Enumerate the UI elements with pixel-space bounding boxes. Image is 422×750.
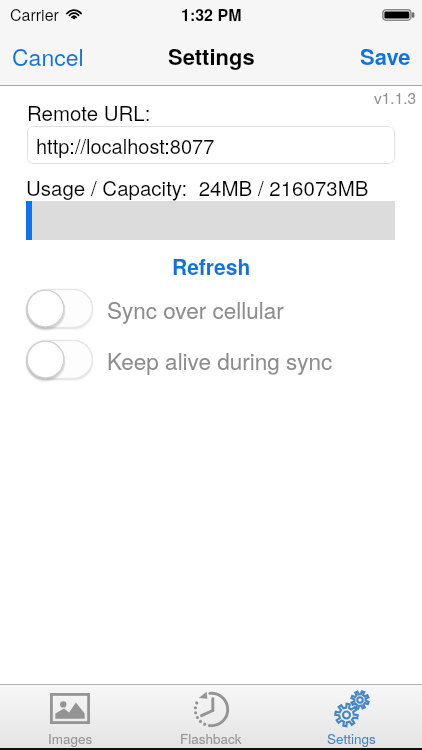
staticText: v1.1.3	[374, 86, 417, 108]
staticText: Usage / Capacity: 24MB / 216073MB	[26, 172, 369, 201]
staticText: Images	[48, 729, 93, 748]
other: Battery full	[382, 9, 415, 21]
staticText: Remote URL:	[27, 97, 151, 126]
staticText: Flashback	[180, 729, 242, 748]
button[interactable]: Flashback	[140, 685, 281, 748]
staticText: Refresh	[172, 251, 251, 281]
button[interactable]: Cancel	[0, 34, 94, 79]
button[interactable]: http://localhost:8077	[27, 126, 395, 164]
staticText: Save	[360, 40, 411, 72]
button[interactable]: Keep alive during sync	[0, 340, 422, 379]
staticText: Cancel	[12, 40, 84, 73]
button[interactable]: Images	[0, 685, 140, 748]
staticText: Keep alive during sync	[107, 344, 333, 376]
staticText: Carrier	[10, 3, 59, 26]
other: Keep alive during sync	[26, 340, 93, 379]
button[interactable]: Sync over cellular	[0, 289, 422, 328]
other: Sync over cellular	[26, 289, 93, 328]
staticText: Settings	[168, 40, 255, 72]
button[interactable]: Settings	[281, 685, 422, 748]
button[interactable]: Save	[350, 34, 422, 78]
staticText: 1:32 PM	[181, 3, 242, 26]
button[interactable]: Refresh	[158, 247, 265, 285]
staticText: Sync over cellular	[107, 293, 284, 325]
staticText: http://localhost:8077	[36, 131, 215, 160]
staticText: Settings	[327, 729, 376, 748]
